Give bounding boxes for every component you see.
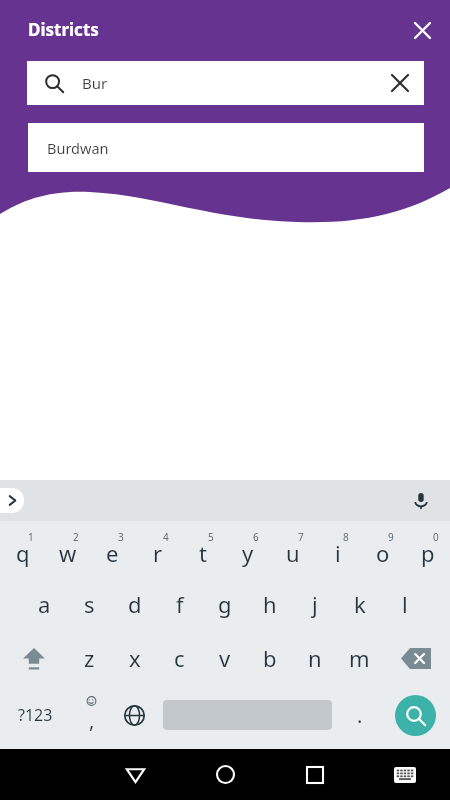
button[interactable]: 2 <box>45 521 90 578</box>
staticText: Burdwan <box>47 138 109 158</box>
button[interactable]: Switch keyboard <box>360 749 450 800</box>
button[interactable]: k <box>337 578 382 630</box>
button[interactable]: Voice input <box>404 484 438 518</box>
staticText: n <box>308 643 322 673</box>
staticText: 4 <box>163 530 169 544</box>
button[interactable]: 3 <box>90 521 135 578</box>
button[interactable]: Shift <box>0 630 67 686</box>
button[interactable]: x <box>112 630 157 686</box>
button[interactable]: ?123 <box>0 686 70 744</box>
button[interactable]: . <box>338 686 381 744</box>
staticText: 0 <box>433 530 439 544</box>
button[interactable]: Backspace <box>382 630 450 686</box>
staticText: u <box>286 538 300 568</box>
staticText: 7 <box>298 530 304 544</box>
staticText: ?123 <box>18 704 53 726</box>
staticText: 2 <box>73 530 79 544</box>
button[interactable]: Space <box>156 686 338 744</box>
button[interactable]: Home <box>180 749 270 800</box>
button[interactable]: Close <box>402 10 442 50</box>
button[interactable]: v <box>202 630 247 686</box>
staticText: j <box>312 589 318 619</box>
button[interactable]: 5 <box>180 521 225 578</box>
button[interactable]: , <box>70 686 113 744</box>
button[interactable]: l <box>382 578 427 630</box>
staticText: m <box>349 643 370 673</box>
staticText: d <box>128 589 142 619</box>
button[interactable]: 7 <box>270 521 315 578</box>
button[interactable]: a <box>22 578 67 630</box>
staticText: r <box>153 538 163 568</box>
button[interactable]: n <box>292 630 337 686</box>
button[interactable]: 4 <box>135 521 180 578</box>
staticText: y <box>242 538 254 568</box>
button[interactable]: j <box>292 578 337 630</box>
button[interactable]: b <box>247 630 292 686</box>
staticText: , <box>89 707 95 734</box>
staticText: l <box>402 589 408 619</box>
button[interactable]: s <box>67 578 112 630</box>
staticText: v <box>219 643 231 673</box>
button[interactable]: Clear <box>376 61 424 105</box>
staticText: 9 <box>388 530 394 544</box>
staticText: z <box>84 643 95 673</box>
staticText: q <box>16 538 30 568</box>
staticText: w <box>59 538 77 568</box>
button[interactable]: Change language <box>113 686 156 744</box>
button[interactable]: Bur <box>27 61 424 105</box>
button[interactable]: 0 <box>405 521 450 578</box>
staticText: Bur <box>82 73 376 93</box>
button[interactable]: d <box>112 578 157 630</box>
staticText: s <box>84 589 95 619</box>
button[interactable]: f <box>157 578 202 630</box>
button[interactable]: Recents <box>270 749 360 800</box>
button[interactable]: 8 <box>315 521 360 578</box>
button[interactable]: m <box>337 630 382 686</box>
button[interactable]: Districts <box>22 14 105 45</box>
staticText: k <box>354 589 366 619</box>
button[interactable]: Back <box>90 749 180 800</box>
button[interactable]: Expand suggestions <box>0 488 24 513</box>
button[interactable]: Burdwan <box>28 123 424 172</box>
staticText: a <box>38 589 51 619</box>
staticText: Districts <box>28 18 99 41</box>
button[interactable]: c <box>157 630 202 686</box>
button[interactable]: g <box>202 578 247 630</box>
staticText: g <box>218 589 232 619</box>
staticText: e <box>106 538 119 568</box>
button[interactable]: 6 <box>225 521 270 578</box>
staticText: f <box>176 589 184 619</box>
staticText: o <box>376 538 390 568</box>
staticText: t <box>199 538 207 568</box>
button[interactable]: 9 <box>360 521 405 578</box>
staticText: b <box>263 643 277 673</box>
button[interactable]: 1 <box>0 521 45 578</box>
staticText: h <box>263 589 277 619</box>
staticText: x <box>129 643 141 673</box>
button[interactable]: z <box>67 630 112 686</box>
staticText: 3 <box>118 530 124 544</box>
staticText: i <box>335 538 341 568</box>
button[interactable]: Search <box>381 686 450 744</box>
staticText: 8 <box>343 530 349 544</box>
button[interactable]: h <box>247 578 292 630</box>
staticText: 6 <box>253 530 259 544</box>
staticText: . <box>357 702 363 729</box>
staticText: c <box>174 643 185 673</box>
staticText: 1 <box>28 530 34 544</box>
staticText: p <box>421 538 435 568</box>
staticText: 5 <box>208 530 214 544</box>
